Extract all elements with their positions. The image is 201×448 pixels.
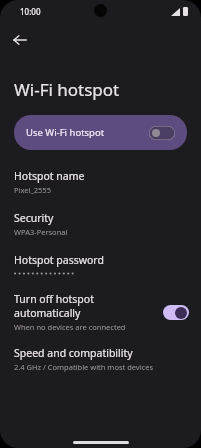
- button[interactable]: Security: [0, 211, 201, 237]
- staticText: When no devices are connected: [14, 322, 126, 332]
- staticText: Turn off hotspot automatically: [14, 292, 157, 320]
- button[interactable]: Back: [6, 26, 34, 54]
- staticText: 2.4 GHz / Compatible with most devices: [14, 362, 154, 372]
- button[interactable]: Hotspot password: [0, 253, 201, 276]
- staticText: Hotspot password: [14, 253, 104, 267]
- staticText: Use Wi-Fi hotspot: [26, 126, 149, 139]
- staticText: Security: [14, 211, 54, 225]
- staticText: WPA3-Personal: [14, 227, 68, 237]
- staticText: Hotspot name: [14, 169, 85, 183]
- button[interactable]: Speed and compatibility: [0, 346, 201, 372]
- button[interactable]: Turn off hotspot automatically: [0, 292, 201, 332]
- staticText: Pixel_2555: [14, 185, 51, 195]
- staticText: 10:00: [20, 6, 41, 17]
- button[interactable]: Hotspot name: [0, 169, 201, 195]
- button[interactable]: Use Wi-Fi hotspot: [14, 115, 187, 150]
- staticText: Speed and compatibility: [14, 346, 133, 360]
- staticText: Wi-Fi hotspot: [14, 78, 120, 101]
